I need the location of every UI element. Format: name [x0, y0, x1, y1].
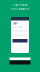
staticText: Sign in below: [12, 3, 27, 6]
staticText: Your Balance: [10, 7, 29, 11]
staticText: Login: [12, 22, 17, 25]
staticText: Enter details: [12, 26, 22, 28]
